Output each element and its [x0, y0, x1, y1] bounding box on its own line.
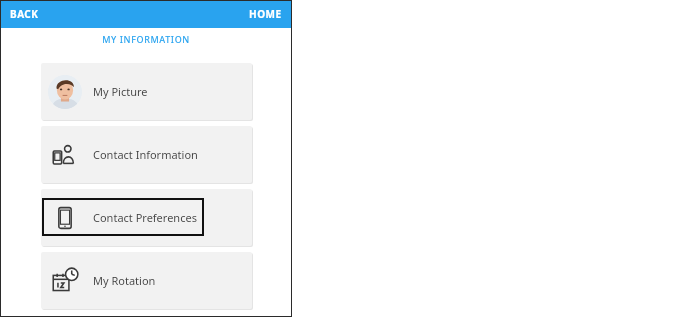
staticText: BACK: [10, 7, 39, 21]
other: My rotation: [51, 267, 79, 295]
staticText: Contact Preferences: [93, 210, 197, 225]
button[interactable]: Contact information: [41, 126, 252, 183]
button[interactable]: My rotation: [41, 252, 252, 309]
button[interactable]: Profile photo: [41, 63, 252, 120]
other: Profile photo: [48, 75, 82, 109]
staticText: HOME: [249, 7, 282, 21]
staticText: My Picture: [93, 84, 148, 99]
other: Contact information: [51, 141, 79, 169]
other: Contact preferences: [51, 204, 79, 232]
staticText: My Rotation: [93, 273, 156, 288]
button[interactable]: HOME: [239, 0, 292, 28]
button[interactable]: BACK: [0, 0, 49, 28]
button[interactable]: Contact preferences: [41, 189, 252, 246]
staticText: Contact Information: [93, 147, 198, 162]
staticText: MY INFORMATION: [0, 33, 292, 45]
